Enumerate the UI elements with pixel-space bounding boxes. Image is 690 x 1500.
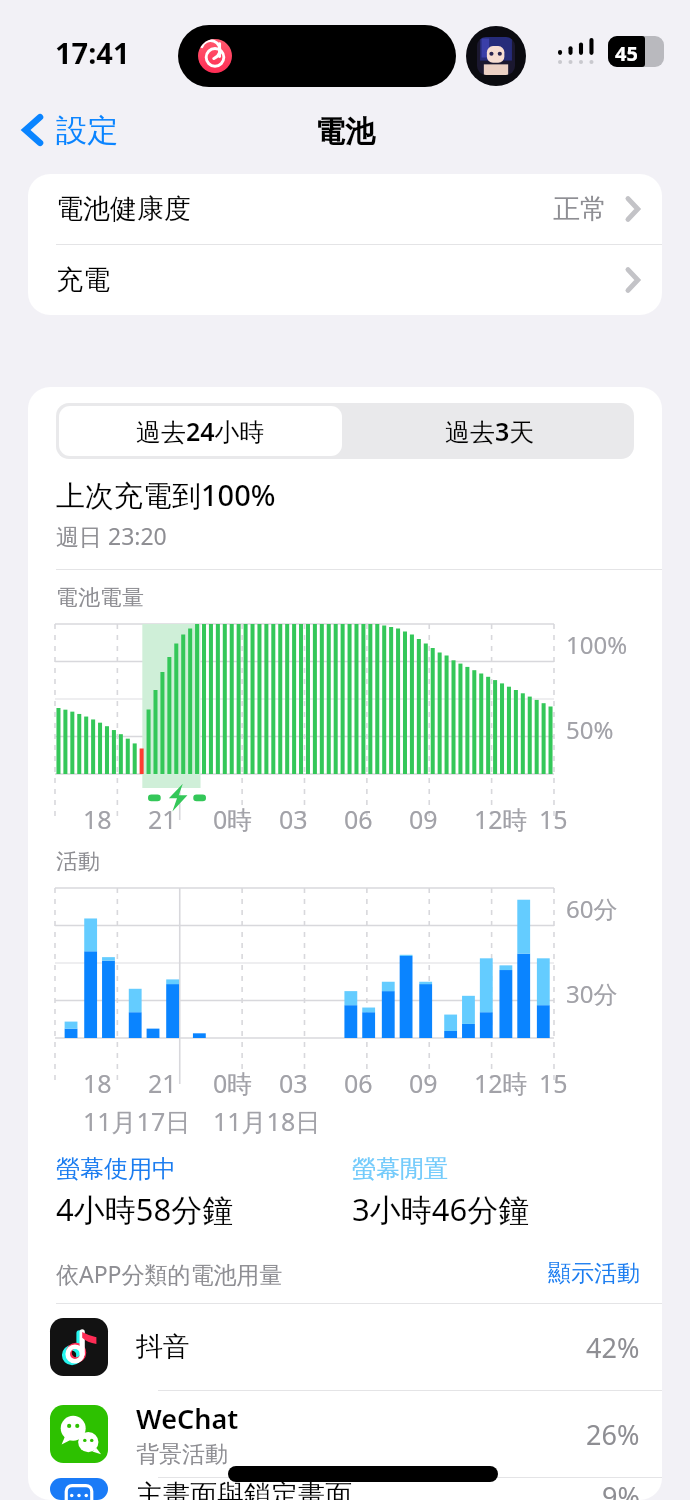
button[interactable]: 顯示活動 [548,1259,640,1288]
staticText: 4小時58分鐘 [56,1188,234,1230]
staticText: 18 [83,802,112,836]
staticText: 11月17日 [83,1104,191,1138]
button[interactable]: 電池健康度 [28,174,662,244]
staticText: 15 [539,1066,568,1100]
staticText: 21 [148,1066,177,1100]
staticText: 09 [409,1066,438,1100]
staticText: 電池健康度 [56,192,191,226]
staticText: 過去24小時 [136,414,265,448]
staticText: 42% [586,1329,640,1366]
staticText: 21 [148,802,177,836]
staticText: 週日 23:20 [56,520,167,551]
staticText: 正常 [553,192,607,226]
staticText: 電池 [0,113,690,151]
staticText: 12時 [474,1066,528,1100]
staticText: 30分 [566,977,618,1010]
staticText: 背景活動 [136,1440,228,1469]
staticText: 03 [279,1066,308,1100]
staticText: 06 [344,802,373,836]
staticText: 充電 [56,263,110,297]
staticText: WeChat [136,1400,239,1437]
button[interactable]: WeChat [28,1391,662,1477]
staticText: 螢幕閒置 [352,1154,448,1184]
staticText: 11月18日 [213,1104,321,1138]
staticText: 過去3天 [445,414,535,448]
staticText: 依APP分類的電池用量 [56,1258,283,1289]
staticText: 09 [409,802,438,836]
staticText: 電池電量 [56,584,144,612]
staticText: 12時 [474,802,528,836]
staticText: 螢幕使用中 [56,1154,176,1184]
staticText: 17:41 [55,33,130,72]
button[interactable]: 過去3天 [345,403,634,459]
staticText: 60分 [566,892,618,925]
staticText: 活動 [56,848,100,876]
staticText: 3小時46分鐘 [352,1188,530,1230]
staticText: 設定 [56,111,118,150]
staticText: 主畫面與鎖定畫面 [136,1478,352,1500]
staticText: 9% [602,1478,640,1500]
staticText: 0時 [213,802,253,836]
button[interactable]: 主畫面與鎖定畫面 [28,1478,662,1500]
button[interactable]: 設定 [14,96,126,164]
button[interactable]: 充電 [28,245,662,315]
staticText: 26% [586,1416,640,1453]
staticText: 0時 [213,1066,253,1100]
staticText: 03 [279,802,308,836]
staticText: 45 [615,40,638,67]
staticText: 顯示活動 [548,1259,640,1288]
staticText: 15 [539,802,568,836]
staticText: 06 [344,1066,373,1100]
staticText: 抖音 [136,1330,190,1364]
staticText: 18 [83,1066,112,1100]
staticText: 100% [566,628,628,661]
staticText: 上次充電到100% [56,475,276,515]
button[interactable]: 抖音 [28,1304,662,1390]
staticText: 50% [566,713,614,746]
button[interactable]: 過去24小時 [56,403,345,459]
